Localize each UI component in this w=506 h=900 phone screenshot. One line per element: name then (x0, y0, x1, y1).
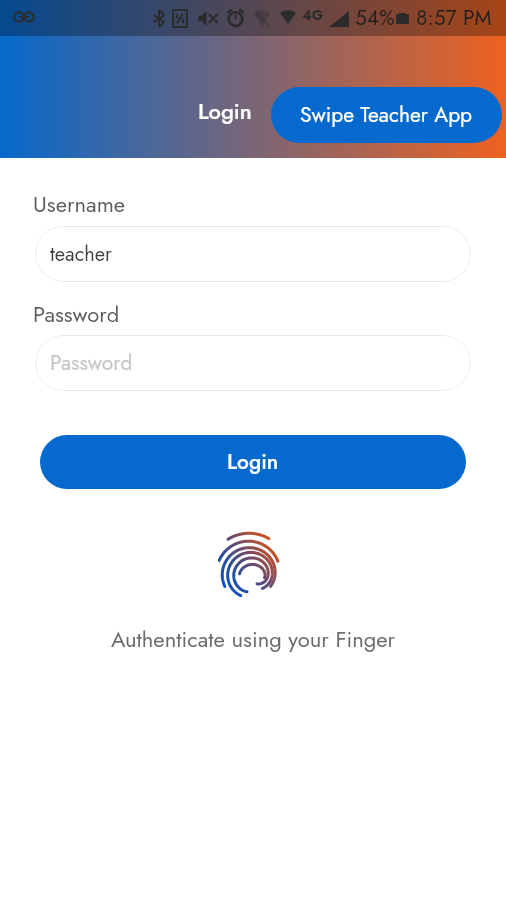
staticText: Password (50, 348, 133, 378)
staticText: 54% (355, 3, 395, 33)
staticText: Login (198, 95, 252, 127)
staticText: teacher (50, 240, 112, 269)
staticText: Password (33, 298, 120, 330)
staticText: 8:57 PM (416, 3, 492, 33)
button[interactable]: Swipe Teacher App (271, 87, 502, 143)
staticText: Swipe Teacher App (300, 100, 473, 130)
button[interactable]: Login (40, 435, 466, 489)
button[interactable]: Password (35, 335, 471, 391)
button[interactable]: Authenticate with fingerprint (221, 528, 285, 598)
button[interactable]: teacher (35, 226, 471, 282)
staticText: Login (227, 447, 279, 477)
staticText: Authenticate using your Finger (0, 623, 506, 655)
staticText: Username (33, 188, 126, 220)
staticText: 4G (302, 5, 324, 25)
button[interactable]: Login (192, 87, 258, 135)
